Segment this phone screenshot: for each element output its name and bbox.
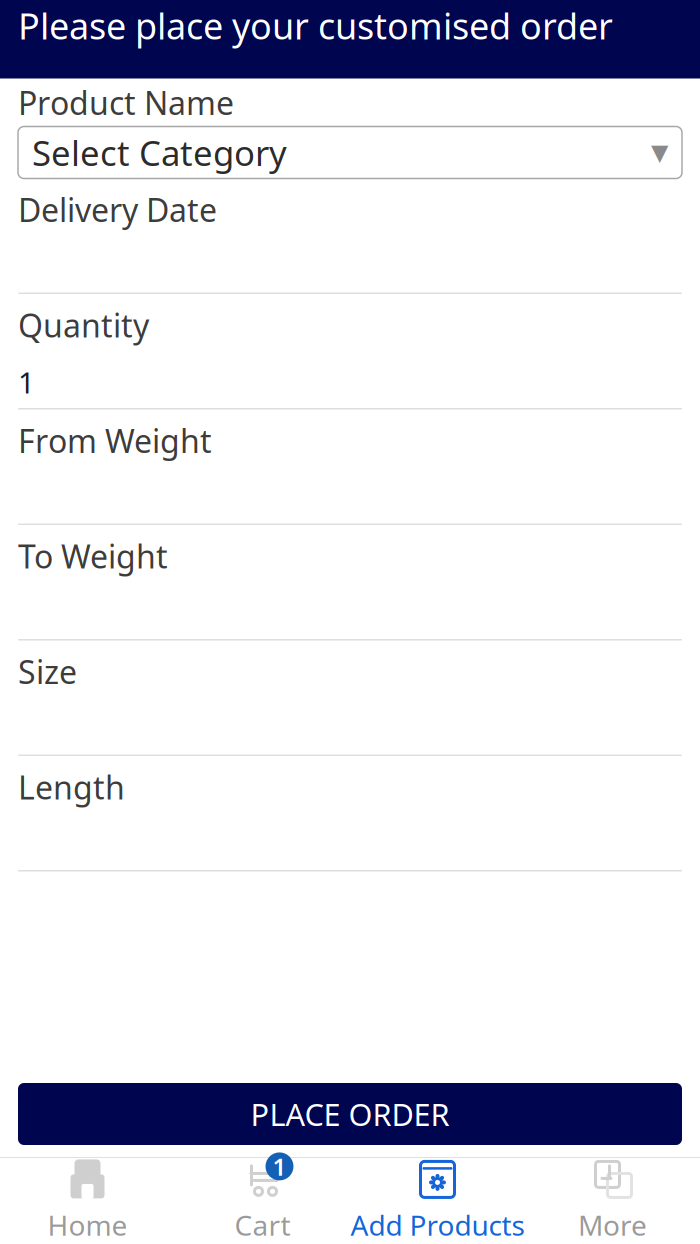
staticText: Product Name — [18, 81, 234, 124]
staticText: 1 — [18, 362, 35, 401]
staticText: ▼ — [651, 140, 668, 165]
staticText: Select Category — [32, 129, 287, 175]
button[interactable]: Home — [0, 1159, 175, 1243]
button[interactable]: PLACE ORDER — [18, 1083, 682, 1145]
staticText: Length — [18, 766, 125, 808]
button[interactable]: Select Category — [18, 126, 682, 178]
staticText: Size — [18, 650, 77, 693]
staticText: Cart — [234, 1206, 290, 1244]
staticText: Delivery Date — [18, 188, 217, 231]
staticText: From Weight — [18, 419, 212, 462]
staticText: Quantity — [18, 304, 149, 346]
staticText: To Weight — [18, 535, 168, 577]
button[interactable]: Add Products — [350, 1159, 525, 1243]
staticText: PLACE ORDER — [250, 1094, 449, 1134]
staticText: Home — [47, 1206, 127, 1244]
staticText: More — [578, 1206, 647, 1244]
button[interactable]: 1 — [175, 1159, 350, 1243]
staticText: Add Products — [350, 1206, 524, 1244]
staticText: 1 — [272, 1150, 286, 1182]
staticText: Please place your customised order — [18, 2, 613, 49]
button[interactable]: More — [525, 1159, 700, 1243]
